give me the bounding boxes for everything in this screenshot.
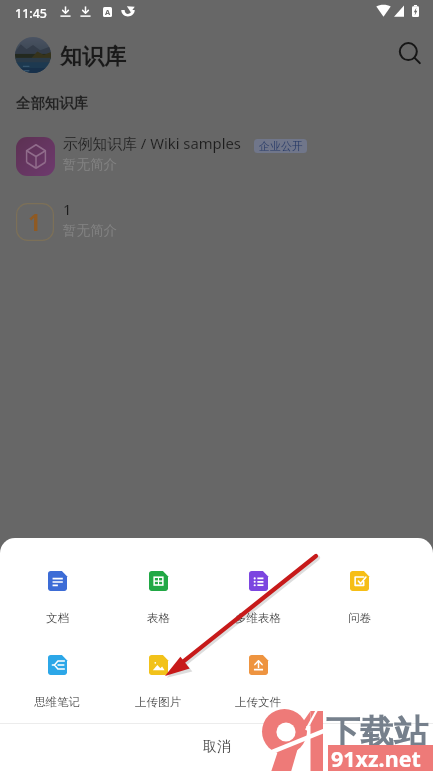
staticText: 91xz.net — [331, 744, 421, 771]
staticText: 暂无简介 — [63, 222, 117, 239]
button[interactable]: 表格 — [121, 565, 195, 625]
staticText: 企业公开 — [259, 139, 303, 153]
staticText: 1 — [63, 199, 72, 219]
button[interactable]: 示例知识库 / Wiki samples — [0, 126, 433, 186]
staticText: 文档 — [46, 611, 69, 625]
button[interactable]: 上传文件 — [221, 649, 295, 709]
button[interactable]: 上传图片 — [121, 649, 195, 709]
button[interactable]: 思维笔记 — [20, 649, 94, 709]
staticText: A — [105, 7, 111, 17]
button[interactable]: 问卷 — [322, 565, 396, 625]
staticText: 知识库 — [60, 43, 126, 71]
staticText: 多维表格 — [235, 611, 281, 625]
button[interactable]: 文档 — [20, 565, 94, 625]
staticText: 上传图片 — [135, 695, 181, 709]
staticText: 11:45 — [15, 5, 48, 22]
button[interactable]: 取消 — [0, 721, 433, 771]
button[interactable]: 搜索 — [390, 34, 430, 74]
button[interactable]: 1 — [0, 192, 433, 252]
staticText: 问卷 — [348, 611, 371, 625]
staticText: 思维笔记 — [34, 695, 80, 709]
staticText: 暂无简介 — [63, 156, 117, 173]
staticText: 表格 — [147, 611, 170, 625]
staticText: 下载站 — [326, 711, 428, 754]
staticText: 上传文件 — [235, 695, 281, 709]
staticText: 全部知识库 — [16, 94, 88, 112]
staticText: 取消 — [203, 738, 231, 756]
button[interactable]: 多维表格 — [221, 565, 295, 625]
staticText: 示例知识库 / Wiki samples — [63, 133, 241, 153]
staticText: 1 — [28, 206, 42, 237]
